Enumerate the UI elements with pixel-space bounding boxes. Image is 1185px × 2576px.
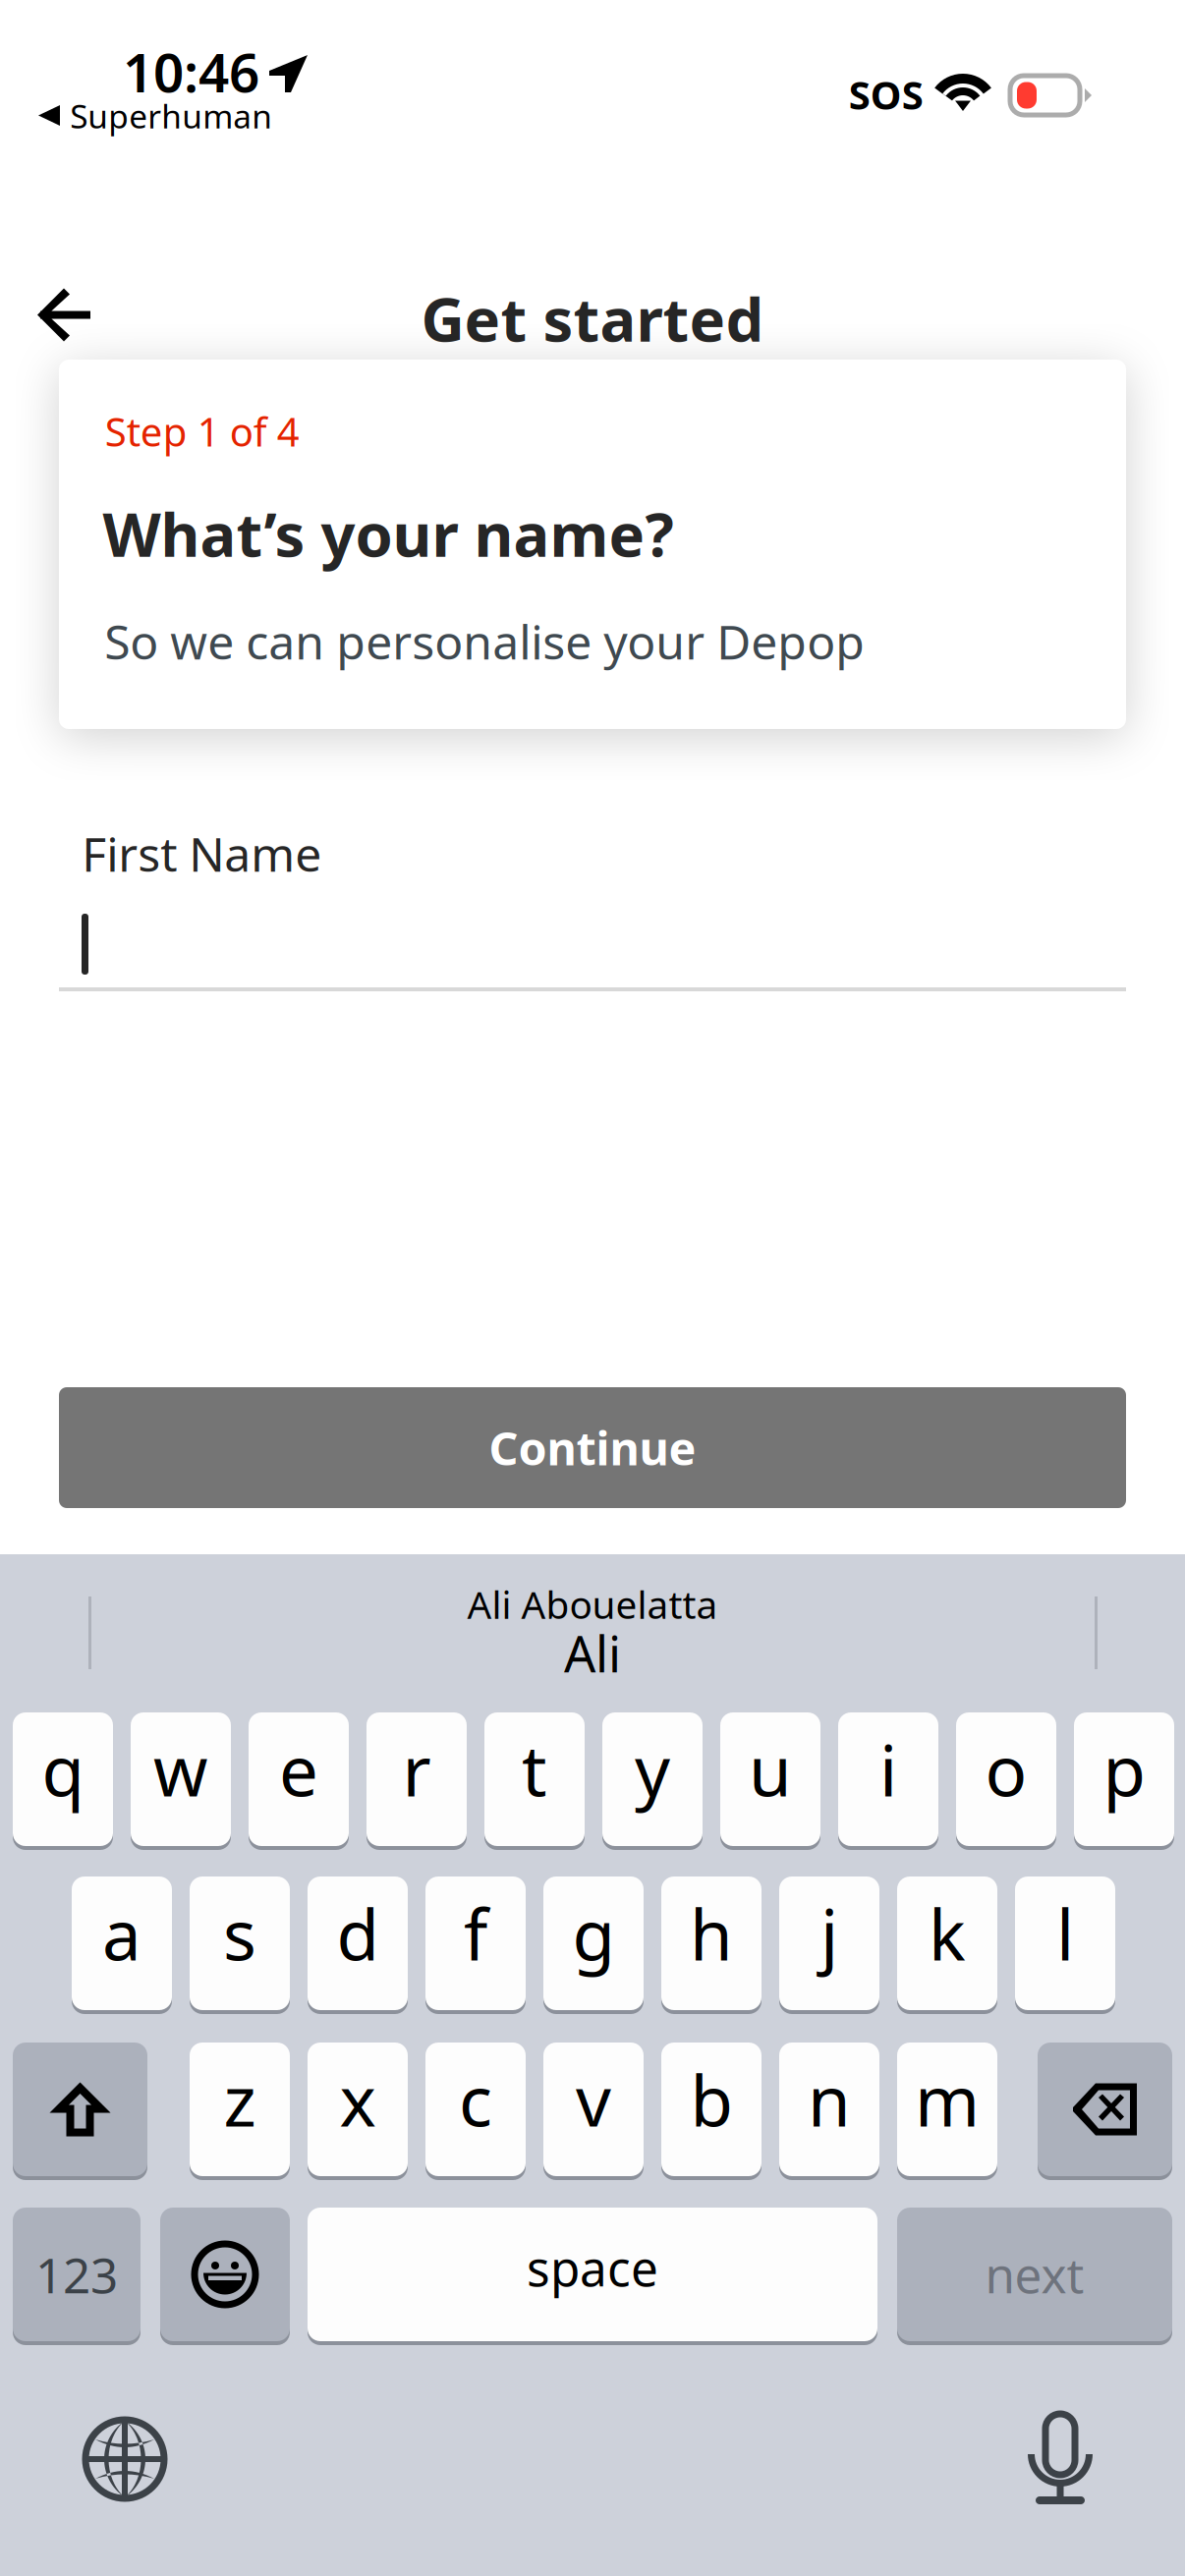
staticText: m xyxy=(915,2053,980,2146)
staticText: 123 xyxy=(35,2242,118,2307)
button[interactable]: p xyxy=(1074,1708,1174,1850)
staticText: o xyxy=(985,1723,1027,1815)
button[interactable]: next xyxy=(897,2204,1172,2345)
staticText: Get started xyxy=(421,278,764,358)
staticText: Ali Abouelatta xyxy=(467,1579,718,1629)
staticText: next xyxy=(985,2242,1084,2307)
staticText: Superhuman xyxy=(70,94,272,138)
staticText: Continue xyxy=(489,1417,696,1478)
button[interactable]: First Name xyxy=(59,894,1126,1012)
staticText: p xyxy=(1103,1723,1145,1815)
button[interactable]: b xyxy=(661,2039,762,2180)
staticText: s xyxy=(223,1887,256,1980)
button[interactable]: z xyxy=(190,2039,290,2180)
button[interactable]: Numbers xyxy=(13,2204,141,2345)
button[interactable]: o xyxy=(956,1708,1056,1850)
button[interactable]: e xyxy=(249,1708,349,1850)
staticText: g xyxy=(572,1887,615,1980)
button[interactable]: s xyxy=(190,1873,290,2014)
staticText: n xyxy=(808,2053,851,2146)
button[interactable]: j xyxy=(779,1873,879,2014)
staticText: space xyxy=(527,2235,658,2300)
button[interactable]: y xyxy=(602,1708,703,1850)
button[interactable]: l xyxy=(1015,1873,1115,2014)
button[interactable]: f xyxy=(425,1873,526,2014)
button[interactable]: q xyxy=(13,1708,113,1850)
button[interactable]: i xyxy=(838,1708,938,1850)
button[interactable]: space xyxy=(308,2204,877,2345)
button[interactable]: c xyxy=(425,2039,526,2180)
staticText: l xyxy=(1056,1887,1074,1980)
staticText: Ali xyxy=(564,1620,621,1686)
button[interactable]: n xyxy=(779,2039,879,2180)
button[interactable]: m xyxy=(897,2039,997,2180)
button[interactable]: Delete xyxy=(1038,2039,1172,2180)
staticText: r xyxy=(402,1723,431,1815)
staticText: u xyxy=(749,1723,792,1815)
staticText: v xyxy=(576,2053,611,2146)
staticText: w xyxy=(153,1723,208,1815)
button[interactable]: d xyxy=(308,1873,408,2014)
button[interactable]: Continue xyxy=(59,1387,1126,1508)
button[interactable]: Back xyxy=(0,0,116,108)
staticText: k xyxy=(929,1887,966,1980)
button[interactable]: x xyxy=(308,2039,408,2180)
staticText: c xyxy=(459,2053,492,2146)
button[interactable]: v xyxy=(543,2039,644,2180)
button[interactable]: u xyxy=(720,1708,820,1850)
staticText: f xyxy=(464,1887,487,1980)
staticText: So we can personalise your Depop xyxy=(104,610,865,672)
staticText: b xyxy=(690,2053,733,2146)
staticText: y xyxy=(635,1723,670,1815)
staticText: SOS xyxy=(849,68,923,120)
staticText: t xyxy=(522,1723,547,1815)
staticText: z xyxy=(224,2053,256,2146)
staticText: First Name xyxy=(82,822,322,885)
staticText: h xyxy=(690,1887,733,1980)
staticText: x xyxy=(339,2053,376,2146)
button[interactable]: h xyxy=(661,1873,762,2014)
button[interactable]: t xyxy=(484,1708,585,1850)
button[interactable]: g xyxy=(543,1873,644,2014)
button[interactable]: w xyxy=(131,1708,231,1850)
button[interactable]: a xyxy=(72,1873,172,2014)
staticText: i xyxy=(879,1723,897,1815)
staticText: q xyxy=(42,1723,84,1815)
staticText: e xyxy=(279,1723,318,1815)
staticText: d xyxy=(337,1887,379,1980)
staticText: 10:46 xyxy=(123,36,259,107)
button[interactable]: k xyxy=(897,1873,997,2014)
staticText: Step 1 of 4 xyxy=(105,405,299,457)
button[interactable]: Shift xyxy=(13,2039,147,2180)
button[interactable]: Emoji xyxy=(160,2204,290,2345)
staticText: a xyxy=(102,1887,141,1980)
staticText: What’s your name? xyxy=(103,493,674,573)
staticText: j xyxy=(820,1887,838,1980)
button[interactable]: r xyxy=(367,1708,467,1850)
